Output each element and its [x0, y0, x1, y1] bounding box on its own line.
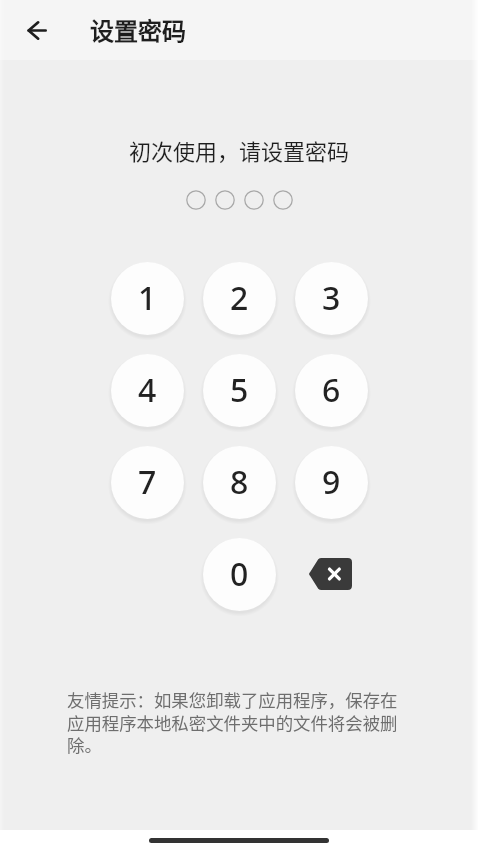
staticText: 0 — [230, 552, 249, 596]
staticText: 8 — [230, 460, 249, 504]
staticText: 5 — [230, 368, 249, 412]
staticText: 友情提示：如果您卸载了应用程序，保存在应用程序本地私密文件夹中的文件将会被删除。 — [67, 687, 407, 757]
staticText: 初次使用，请设置密码 — [0, 134, 478, 166]
staticText: 4 — [138, 368, 157, 412]
staticText: 7 — [138, 460, 157, 504]
button[interactable]: 3 — [295, 262, 368, 335]
button[interactable]: Back — [13, 6, 61, 54]
button[interactable]: 2 — [203, 262, 276, 335]
staticText: 9 — [322, 460, 341, 504]
staticText: 1 — [138, 276, 157, 320]
staticText: 3 — [322, 276, 341, 320]
button[interactable]: 1 — [111, 262, 184, 335]
button[interactable]: 9 — [295, 446, 368, 519]
button[interactable]: 8 — [203, 446, 276, 519]
staticText: 设置密码 — [90, 12, 186, 47]
button[interactable]: Backspace — [295, 538, 368, 611]
staticText: 2 — [230, 276, 249, 320]
button[interactable]: 5 — [203, 354, 276, 427]
button[interactable]: 4 — [111, 354, 184, 427]
staticText: 6 — [322, 368, 341, 412]
button[interactable]: 7 — [111, 446, 184, 519]
button[interactable]: 6 — [295, 354, 368, 427]
button[interactable]: 0 — [203, 538, 276, 611]
